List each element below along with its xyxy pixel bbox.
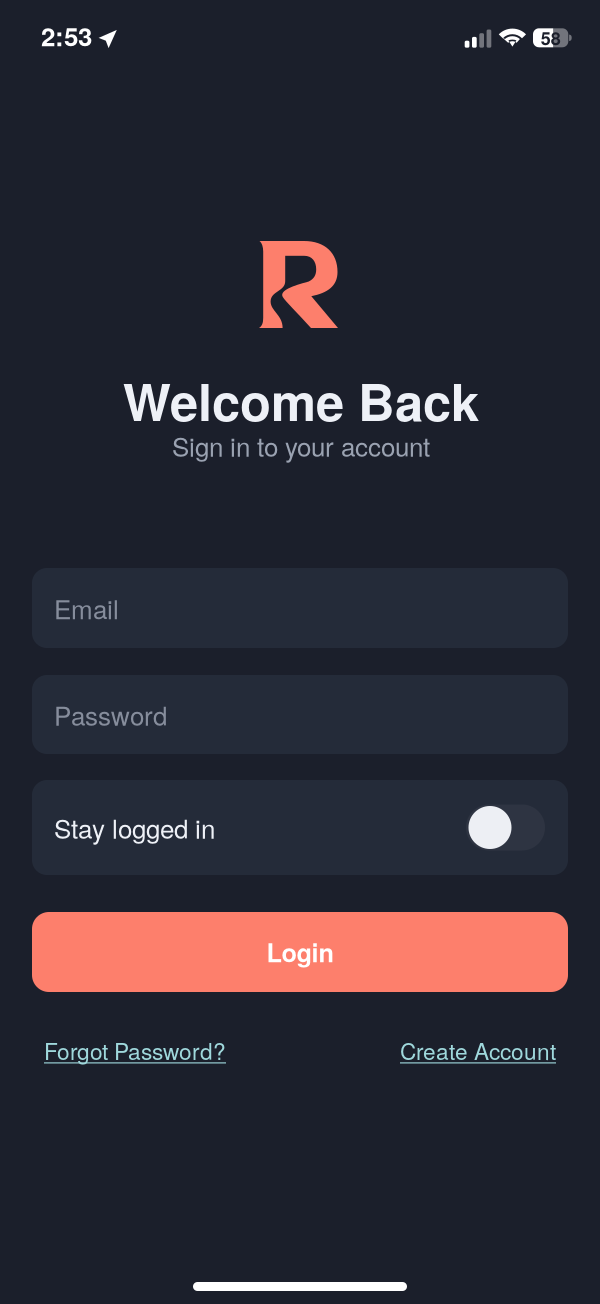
staticText: Forgot Password? [44,1034,226,1066]
staticText: 2:53 [41,17,92,54]
staticText: Email [54,589,119,627]
button[interactable]: Stay logged in [32,780,568,875]
staticText: 58 [541,25,561,51]
staticText: Sign in to your account [172,427,430,464]
staticText: Password [54,696,167,733]
button[interactable]: Login [32,912,568,992]
button[interactable]: Create Account [388,1024,568,1076]
staticText: Welcome Back [123,364,479,437]
button[interactable]: Email [32,568,568,648]
button[interactable]: Forgot Password? [32,1024,238,1076]
staticText: Create Account [400,1034,556,1066]
staticText: Login [266,934,333,970]
button[interactable]: Password [32,675,568,754]
staticText: Stay logged in [54,809,215,846]
